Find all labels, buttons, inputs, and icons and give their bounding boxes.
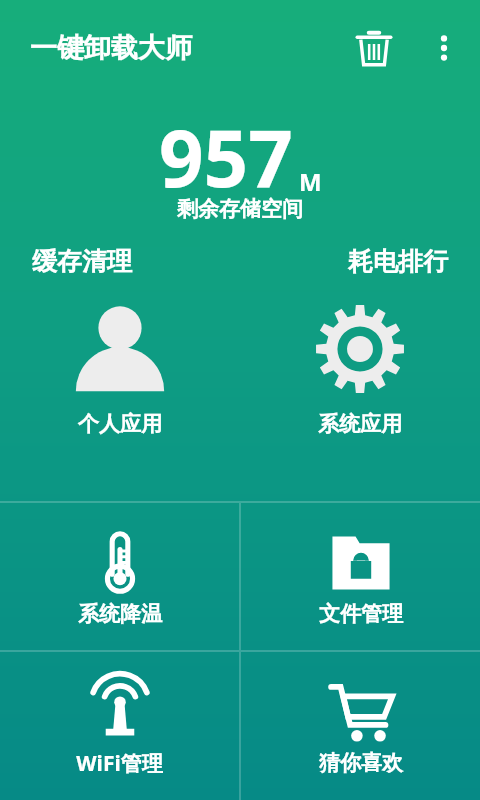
button[interactable]: WiFi管理 [0,652,239,800]
staticText: 剩余存储空间 [177,196,303,222]
button[interactable]: 个人应用 [0,301,240,501]
button[interactable]: 系统降温 [0,503,239,650]
button[interactable]: 文件管理 [241,503,480,650]
staticText: 系统应用 [318,411,402,437]
staticText: 957 [159,104,293,210]
button[interactable]: 一键卸载大师 [30,31,192,65]
staticText: M [299,165,322,198]
staticText: 一键卸载大师 [30,31,192,65]
button[interactable]: More options [422,26,466,70]
staticText: 个人应用 [78,411,162,437]
button[interactable]: 缓存清理 [32,246,240,277]
staticText: 猜你喜欢 [319,750,403,776]
button[interactable]: 猜你喜欢 [241,652,480,800]
staticText: 系统降温 [78,601,162,627]
button[interactable]: Clean [350,24,398,72]
button[interactable]: 耗电排行 [240,246,448,277]
button[interactable]: 系统应用 [240,301,480,501]
staticText: 耗电排行 [348,246,448,277]
staticText: 文件管理 [319,601,403,627]
staticText: WiFi管理 [76,749,163,778]
staticText: 缓存清理 [32,246,132,277]
